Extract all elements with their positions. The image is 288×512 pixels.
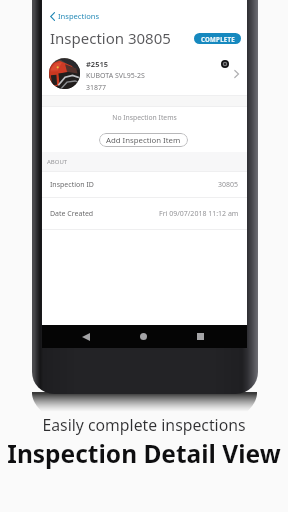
staticText: No Inspection Items xyxy=(42,113,247,122)
button[interactable]: Date Created xyxy=(42,198,247,229)
button[interactable]: Home xyxy=(132,325,154,348)
staticText: Add Inspection Item xyxy=(106,135,181,146)
staticText: COMPLETE xyxy=(201,35,235,43)
button[interactable]: Inspection ID xyxy=(42,172,247,197)
button[interactable]: #2515 xyxy=(42,50,247,95)
staticText: Fri 09/07/2018 11:12 am xyxy=(159,209,239,219)
staticText: 30805 xyxy=(218,180,239,190)
button[interactable]: Add Inspection Item xyxy=(99,133,188,147)
staticText: ABOUT xyxy=(47,158,68,166)
staticText: Easily complete inspections xyxy=(0,414,288,436)
staticText: #2515 xyxy=(86,59,109,69)
button[interactable]: COMPLETE xyxy=(194,33,241,44)
button[interactable]: Recents xyxy=(189,325,211,348)
button[interactable]: Back xyxy=(75,325,97,348)
staticText: Inspection 30805 xyxy=(50,28,171,48)
staticText: KUBOTA SVL95-2S xyxy=(86,71,145,81)
staticText: Inspections xyxy=(58,11,100,21)
staticText: Inspection ID xyxy=(50,180,94,190)
staticText: Date Created xyxy=(50,209,94,219)
staticText: Inspection Detail View xyxy=(0,437,288,470)
staticText: 31877 xyxy=(86,83,107,93)
button[interactable]: Inspections xyxy=(48,9,102,23)
